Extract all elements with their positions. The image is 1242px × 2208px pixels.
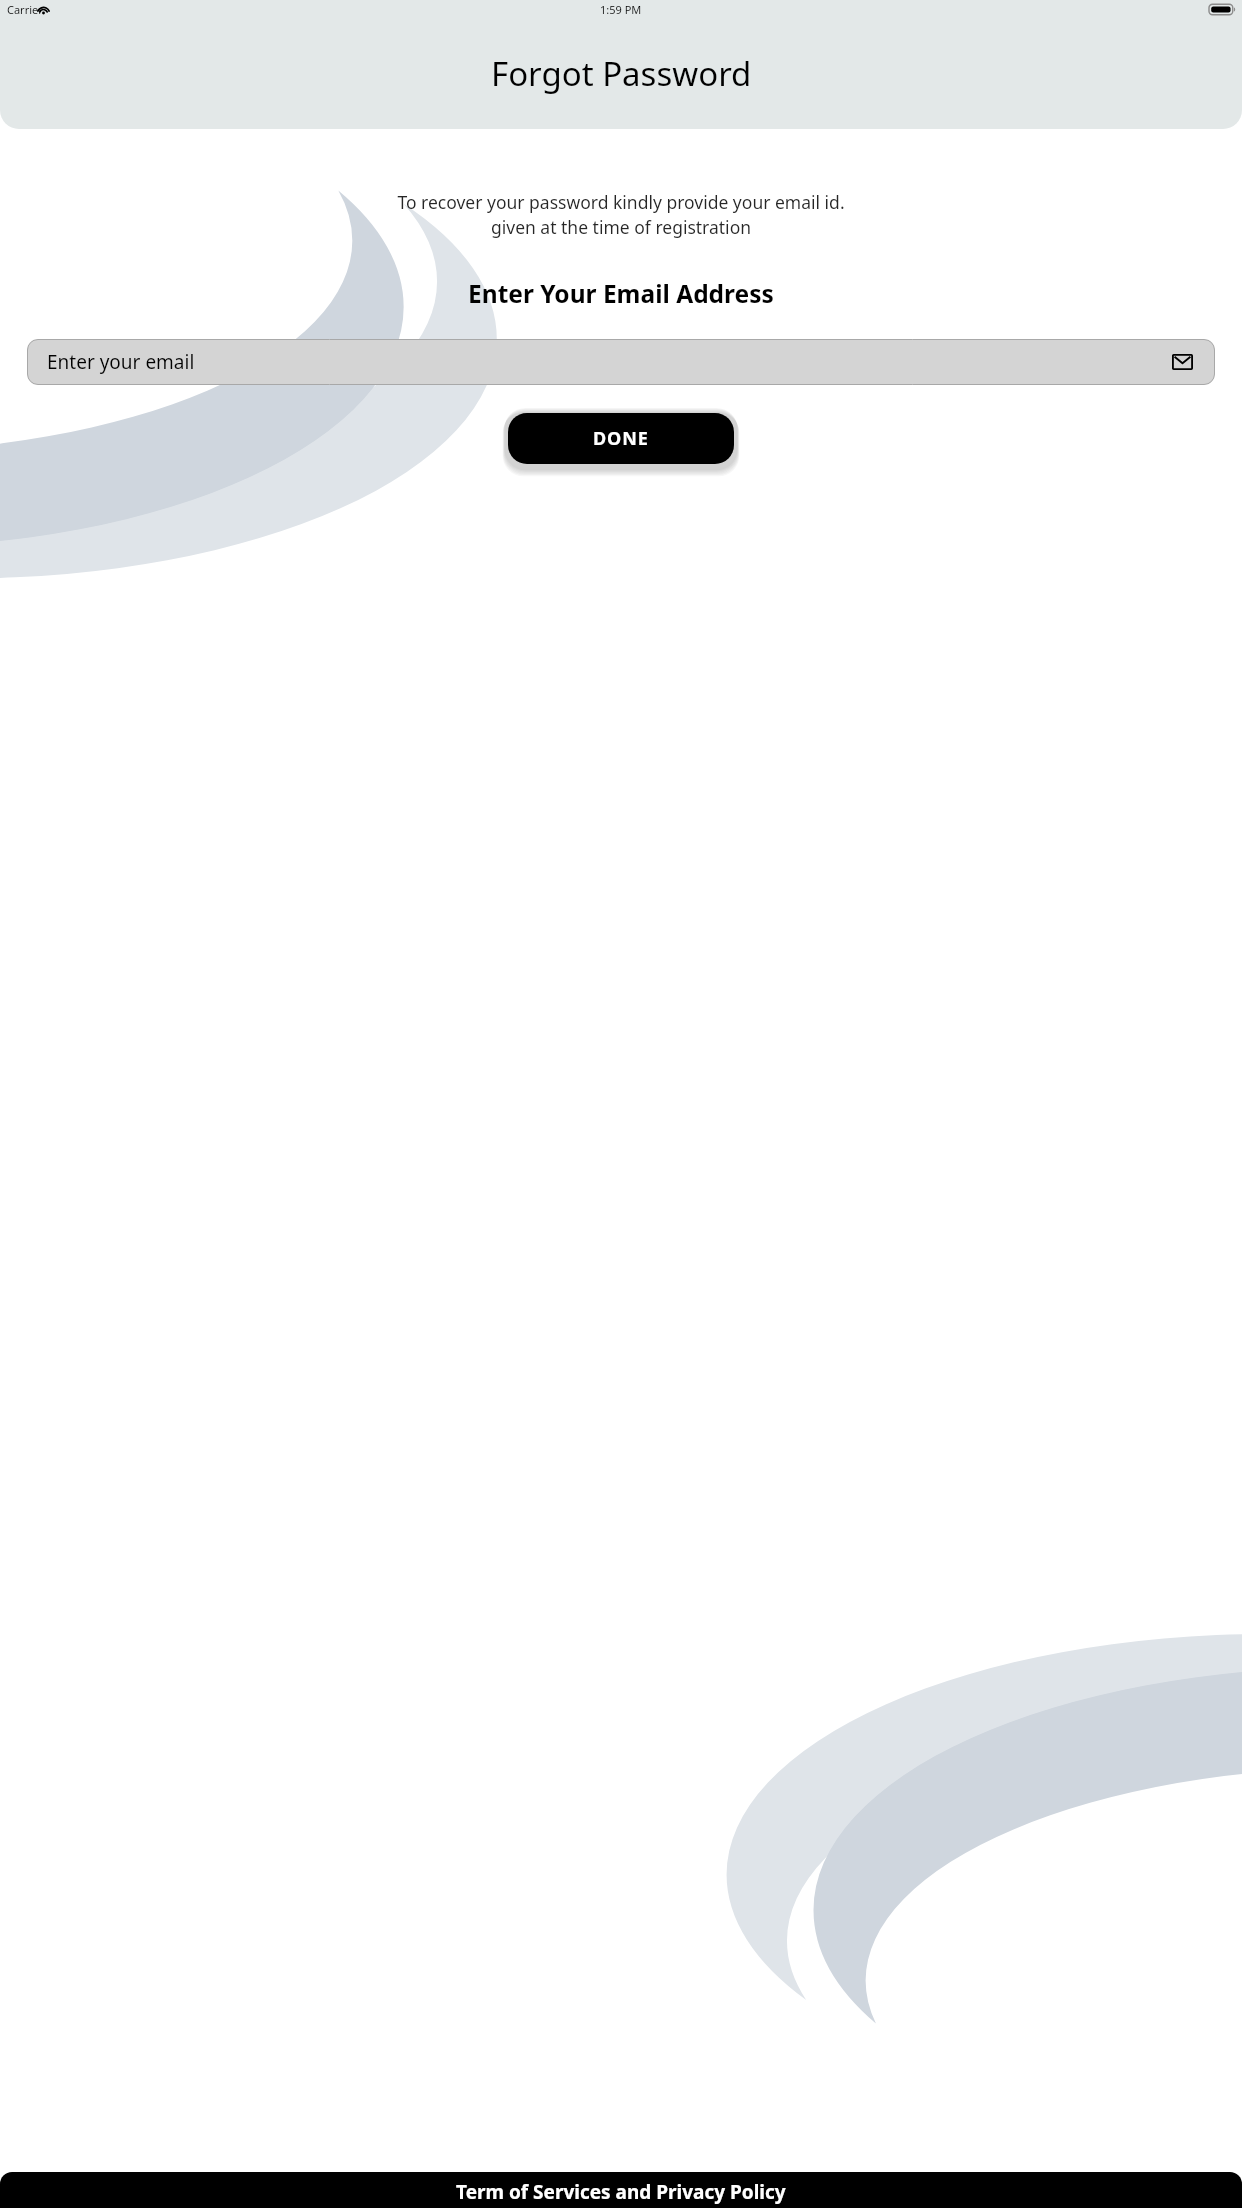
other: Email [1172, 354, 1193, 370]
button[interactable]: Term of Services and Privacy Policy [0, 2172, 1242, 2208]
staticText: DONE [593, 426, 649, 451]
staticText: Carrier [7, 2, 43, 17]
staticText: Enter Your Email Address [468, 277, 774, 310]
staticText: Forgot Password [491, 51, 752, 96]
staticText: To recover your password kindly provide … [18, 190, 1224, 240]
button[interactable]: Enter your email [27, 339, 1215, 385]
staticText: 1:59 PM [600, 2, 642, 17]
staticText: Enter your email [47, 349, 195, 375]
button[interactable]: DONE [508, 413, 734, 464]
staticText: Term of Services and Privacy Policy [456, 2179, 786, 2205]
